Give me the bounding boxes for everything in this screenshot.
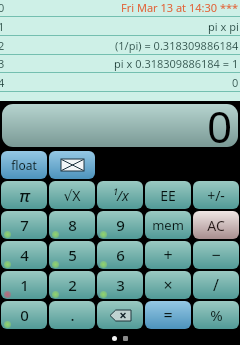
staticText: /	[213, 274, 219, 296]
staticText: 3	[0, 56, 5, 71]
staticText: 8	[68, 215, 77, 235]
button[interactable]: float	[1, 151, 47, 179]
staticText: 1	[20, 275, 29, 295]
staticText: +/-	[207, 186, 225, 205]
staticText: %	[210, 305, 223, 325]
button[interactable]: /	[193, 271, 239, 299]
staticText: √X	[63, 186, 81, 205]
button[interactable]: 7	[1, 211, 47, 239]
staticText: 5	[68, 245, 77, 265]
staticText: pi x pi	[208, 19, 239, 34]
button[interactable]: .	[49, 301, 95, 329]
button[interactable]: =	[145, 301, 191, 329]
staticText: AC	[207, 216, 225, 235]
button[interactable]: 1	[1, 271, 47, 299]
button[interactable]: +/-	[193, 181, 239, 209]
staticText: 7	[20, 215, 29, 235]
staticText: 0	[20, 305, 29, 325]
staticText: 2	[0, 38, 5, 53]
staticText: +	[163, 244, 173, 266]
button[interactable]: 2	[49, 271, 95, 299]
button[interactable]: 0	[1, 301, 47, 329]
button[interactable]: 8	[49, 211, 95, 239]
staticText: 2	[68, 275, 77, 295]
button[interactable]: mem	[145, 211, 191, 239]
staticText: =	[163, 304, 173, 326]
staticText: pi x 0.318309886184 = 1	[114, 56, 239, 71]
staticText: 9	[116, 215, 125, 235]
button[interactable]: +	[145, 241, 191, 269]
staticText: 0	[232, 75, 239, 90]
staticText: mem	[152, 216, 184, 234]
button[interactable]: %	[193, 301, 239, 329]
staticText: 4	[20, 245, 29, 265]
staticText: 0	[0, 0, 5, 15]
staticText: .	[70, 305, 75, 325]
button[interactable]: 3	[97, 271, 143, 299]
button[interactable]: ¹/x	[97, 181, 143, 209]
staticText: float	[11, 157, 37, 173]
button[interactable]: Delete	[97, 301, 143, 329]
staticText: 0	[207, 104, 233, 147]
button[interactable]: 4	[1, 241, 47, 269]
staticText: (1/pi) = 0.318309886184	[115, 38, 239, 53]
button[interactable]: 5	[49, 241, 95, 269]
button[interactable]: AC	[193, 211, 239, 239]
staticText: Fri Mar 13 at 14:30 ***	[121, 0, 239, 15]
button[interactable]: −	[193, 241, 239, 269]
staticText: 4	[0, 75, 5, 90]
button[interactable]: Email	[49, 151, 95, 179]
staticText: ×	[163, 274, 173, 296]
button[interactable]: EE	[145, 181, 191, 209]
staticText: 1	[0, 19, 5, 34]
staticText: 6	[116, 245, 125, 265]
button[interactable]: 9	[97, 211, 143, 239]
staticText: −	[211, 244, 221, 266]
button[interactable]: π	[1, 181, 47, 209]
button[interactable]: √X	[49, 181, 95, 209]
staticText: ¹/x	[112, 186, 129, 205]
staticText: 3	[116, 275, 125, 295]
staticText: EE	[160, 186, 176, 205]
button[interactable]: 6	[97, 241, 143, 269]
button[interactable]: ×	[145, 271, 191, 299]
staticText: π	[19, 184, 30, 207]
